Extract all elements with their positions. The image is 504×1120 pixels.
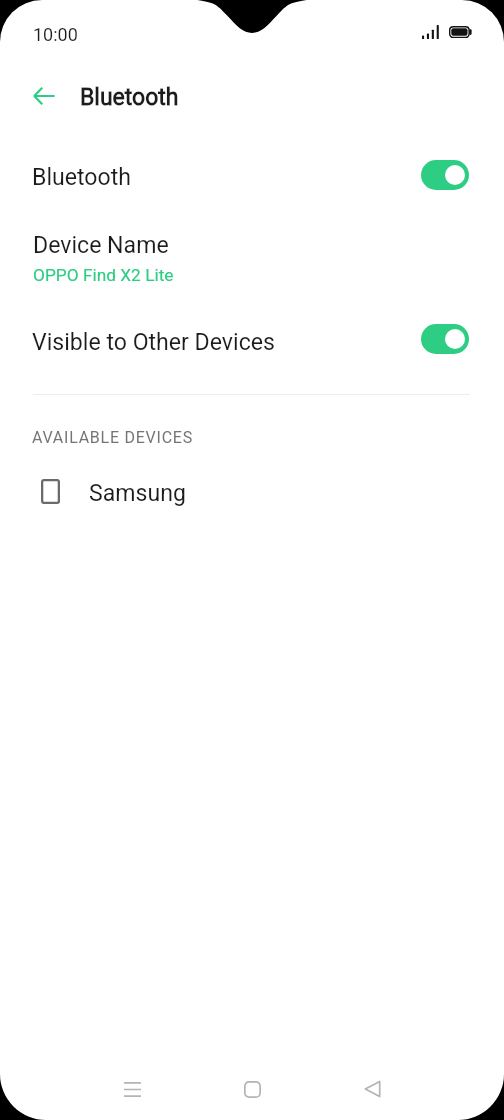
button[interactable]: Toggle on <box>421 160 469 190</box>
staticText: Visible to Other Devices <box>32 329 275 356</box>
button[interactable]: Device Name <box>0 217 504 295</box>
button[interactable]: Toggle on <box>421 324 469 354</box>
button[interactable]: Back <box>22 73 67 118</box>
button[interactable]: Visible to Other Devices <box>0 310 504 372</box>
button[interactable]: Bluetooth <box>0 145 504 207</box>
staticText: Bluetooth <box>32 164 131 191</box>
button[interactable]: Samsung <box>0 462 504 520</box>
staticText: Bluetooth <box>80 84 179 111</box>
staticText: Device Name <box>33 232 169 259</box>
staticText: Samsung <box>89 480 186 507</box>
staticText: 10:00 <box>33 24 78 45</box>
staticText: OPPO Find X2 Lite <box>33 265 174 285</box>
button[interactable]: Recent apps <box>108 1065 156 1113</box>
button[interactable]: Back <box>348 1065 396 1113</box>
button[interactable]: Home <box>228 1065 276 1113</box>
staticText: AVAILABLE DEVICES <box>32 428 193 447</box>
